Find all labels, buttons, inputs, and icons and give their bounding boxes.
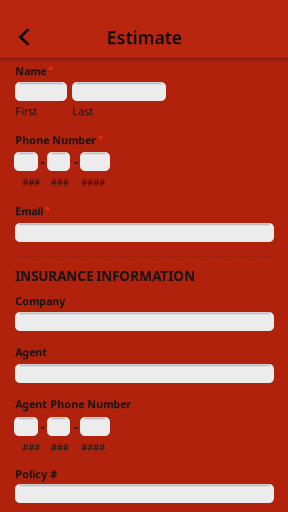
staticText: Policy #	[15, 467, 57, 481]
button[interactable]: Line number	[80, 417, 110, 436]
staticText: Agent	[15, 345, 47, 359]
staticText: ####	[81, 176, 105, 188]
button[interactable]: Line number	[80, 152, 110, 171]
button[interactable]: Back	[0, 15, 52, 59]
staticText: *	[45, 203, 50, 216]
button[interactable]: Company	[15, 312, 274, 331]
staticText: Email	[15, 204, 43, 218]
staticText: ###	[50, 176, 68, 188]
staticText: ###	[22, 176, 40, 188]
staticText: INSURANCE INFORMATION	[15, 267, 195, 285]
button[interactable]: First name	[15, 82, 67, 101]
staticText: -	[74, 419, 78, 435]
button[interactable]: Policy number	[15, 484, 274, 503]
button[interactable]: Prefix	[47, 417, 70, 436]
staticText: Company	[15, 294, 65, 308]
button[interactable]: Agent	[15, 364, 274, 383]
staticText: ###	[22, 441, 40, 453]
button[interactable]: Prefix	[47, 152, 70, 171]
staticText: Name	[15, 64, 46, 78]
staticText: *	[98, 132, 103, 145]
staticText: Agent Phone Number	[15, 397, 131, 411]
staticText: -	[40, 154, 44, 170]
staticText: Estimate	[106, 26, 181, 49]
staticText: -	[40, 419, 44, 435]
button[interactable]: Last name	[72, 82, 166, 101]
button[interactable]: Area code	[14, 417, 38, 436]
staticText: ###	[50, 441, 68, 453]
staticText: Phone Number	[15, 133, 96, 147]
staticText: *	[48, 63, 53, 76]
staticText: Last	[72, 104, 93, 118]
staticText: ####	[81, 441, 105, 453]
staticText: First	[15, 104, 37, 118]
button[interactable]: Area code	[14, 152, 38, 171]
button[interactable]: Email	[15, 223, 274, 242]
staticText: -	[74, 154, 78, 170]
